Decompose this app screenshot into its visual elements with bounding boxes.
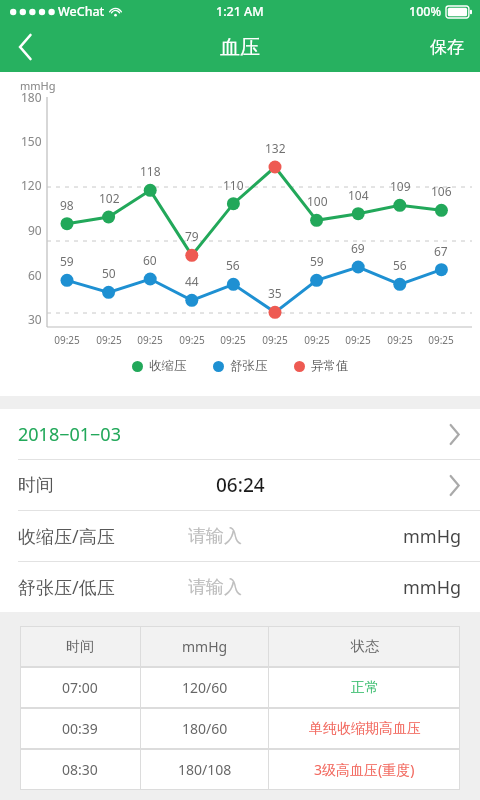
- staticText: 血压: [220, 35, 260, 60]
- button[interactable]: 时间: [20, 626, 460, 667]
- button[interactable]: 08:30: [20, 749, 460, 790]
- staticText: 56: [226, 257, 240, 273]
- staticText: 109: [390, 178, 411, 194]
- staticText: 时间: [66, 638, 94, 656]
- staticText: 09:25: [304, 333, 330, 347]
- staticText: 异常值: [311, 358, 349, 374]
- staticText: 120/60: [182, 678, 228, 697]
- staticText: 56: [393, 257, 407, 273]
- staticText: mmHg: [403, 524, 462, 549]
- staticText: 09:25: [54, 333, 80, 347]
- button[interactable]: 舒张压/低压: [0, 562, 480, 612]
- staticText: 09:25: [387, 333, 413, 347]
- staticText: 102: [99, 190, 120, 206]
- staticText: 单纯收缩期高血压: [309, 720, 421, 738]
- staticText: 舒张压: [230, 358, 268, 374]
- button[interactable]: 2018−01−03: [0, 409, 480, 459]
- staticText: 请输入: [188, 576, 242, 599]
- staticText: WeChat: [58, 3, 105, 20]
- staticText: 50: [102, 265, 116, 281]
- staticText: 118: [140, 163, 161, 179]
- staticText: 180/108: [178, 760, 232, 779]
- staticText: 09:25: [96, 333, 122, 347]
- staticText: 收缩压: [149, 358, 187, 374]
- button[interactable]: Back: [0, 22, 52, 72]
- staticText: 106: [431, 183, 452, 199]
- staticText: 请输入: [188, 525, 242, 548]
- staticText: 2018−01−03: [18, 422, 121, 447]
- staticText: mmHg: [403, 575, 462, 600]
- staticText: 60: [28, 267, 42, 283]
- staticText: 00:39: [62, 719, 98, 738]
- staticText: 180: [21, 89, 42, 105]
- staticText: 120: [21, 177, 42, 193]
- staticText: 保存: [430, 37, 464, 58]
- staticText: 时间: [18, 474, 54, 497]
- staticText: mmHg: [182, 637, 228, 656]
- staticText: 59: [60, 253, 74, 269]
- staticText: 09:25: [220, 333, 246, 347]
- staticText: mmHg: [20, 78, 56, 93]
- staticText: 150: [21, 133, 42, 149]
- staticText: 110: [223, 177, 244, 193]
- staticText: 舒张压/低压: [18, 575, 115, 600]
- staticText: 98: [60, 197, 74, 213]
- staticText: 正常: [351, 679, 379, 697]
- staticText: 06:24: [216, 472, 265, 498]
- staticText: 收缩压/高压: [18, 524, 115, 549]
- staticText: 35: [268, 285, 282, 301]
- staticText: 09:25: [428, 333, 454, 347]
- staticText: 08:30: [62, 760, 98, 779]
- staticText: 132: [265, 140, 286, 156]
- staticText: 09:25: [179, 333, 205, 347]
- button[interactable]: 07:00: [20, 667, 460, 708]
- staticText: 90: [28, 222, 42, 238]
- staticText: 104: [348, 187, 369, 203]
- staticText: 1:21 AM: [216, 3, 264, 20]
- staticText: 180/60: [182, 719, 228, 738]
- staticText: 07:00: [62, 678, 98, 697]
- staticText: 09:25: [137, 333, 163, 347]
- button[interactable]: 时间: [0, 460, 480, 510]
- staticText: 100: [307, 193, 328, 209]
- staticText: 60: [143, 252, 157, 268]
- staticText: 30: [28, 311, 42, 327]
- staticText: 3级高血压(重度): [314, 760, 415, 779]
- button[interactable]: 保存: [414, 22, 480, 72]
- staticText: 100%: [409, 3, 442, 20]
- staticText: 状态: [351, 638, 379, 656]
- staticText: 69: [351, 240, 365, 256]
- staticText: 09:25: [345, 333, 371, 347]
- staticText: 79: [185, 228, 199, 244]
- staticText: 67: [434, 243, 448, 259]
- staticText: 09:25: [262, 333, 288, 347]
- button[interactable]: 收缩压/高压: [0, 511, 480, 561]
- staticText: 44: [185, 273, 199, 289]
- staticText: 59: [310, 253, 324, 269]
- button[interactable]: 00:39: [20, 708, 460, 749]
